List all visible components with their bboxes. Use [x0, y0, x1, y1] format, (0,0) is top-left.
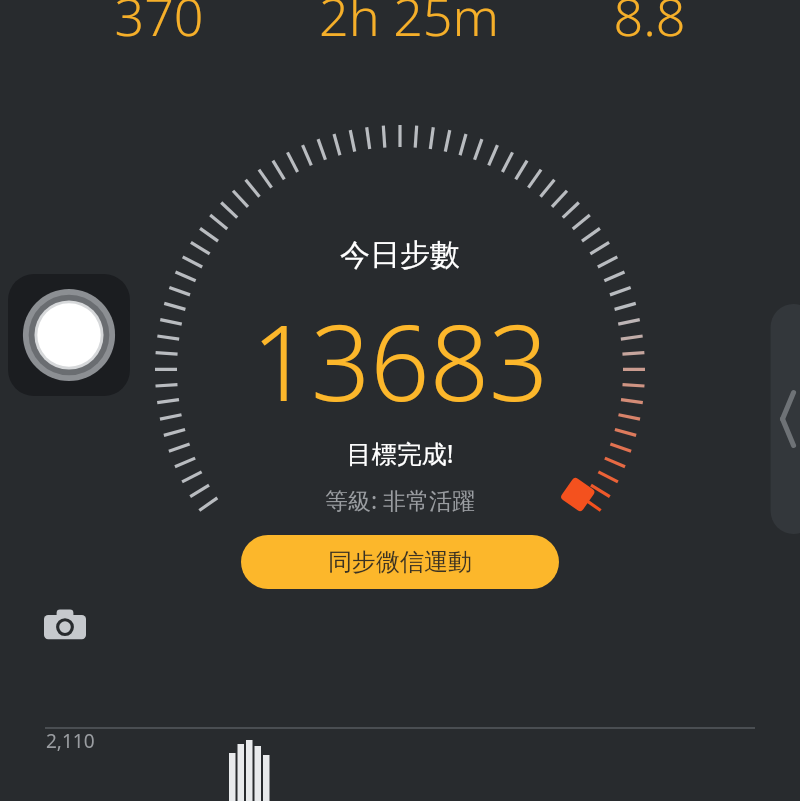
- button[interactable]: Open drawer: [754, 304, 800, 534]
- staticText: 同步微信運動: [328, 547, 472, 577]
- staticText: 目標完成!: [0, 436, 800, 470]
- button[interactable]: Assistive touch: [8, 274, 130, 396]
- staticText: 2,110: [46, 728, 95, 754]
- staticText: 今日步數: [0, 236, 800, 274]
- staticText: 2h 25m: [319, 0, 499, 44]
- button[interactable]: Camera: [40, 600, 90, 650]
- staticText: 13683: [0, 290, 800, 432]
- button[interactable]: 同步微信運動: [241, 535, 559, 589]
- staticText: 等級: 非常活躍: [0, 484, 800, 515]
- staticText: 8.8: [613, 0, 686, 44]
- staticText: 370: [114, 0, 204, 44]
